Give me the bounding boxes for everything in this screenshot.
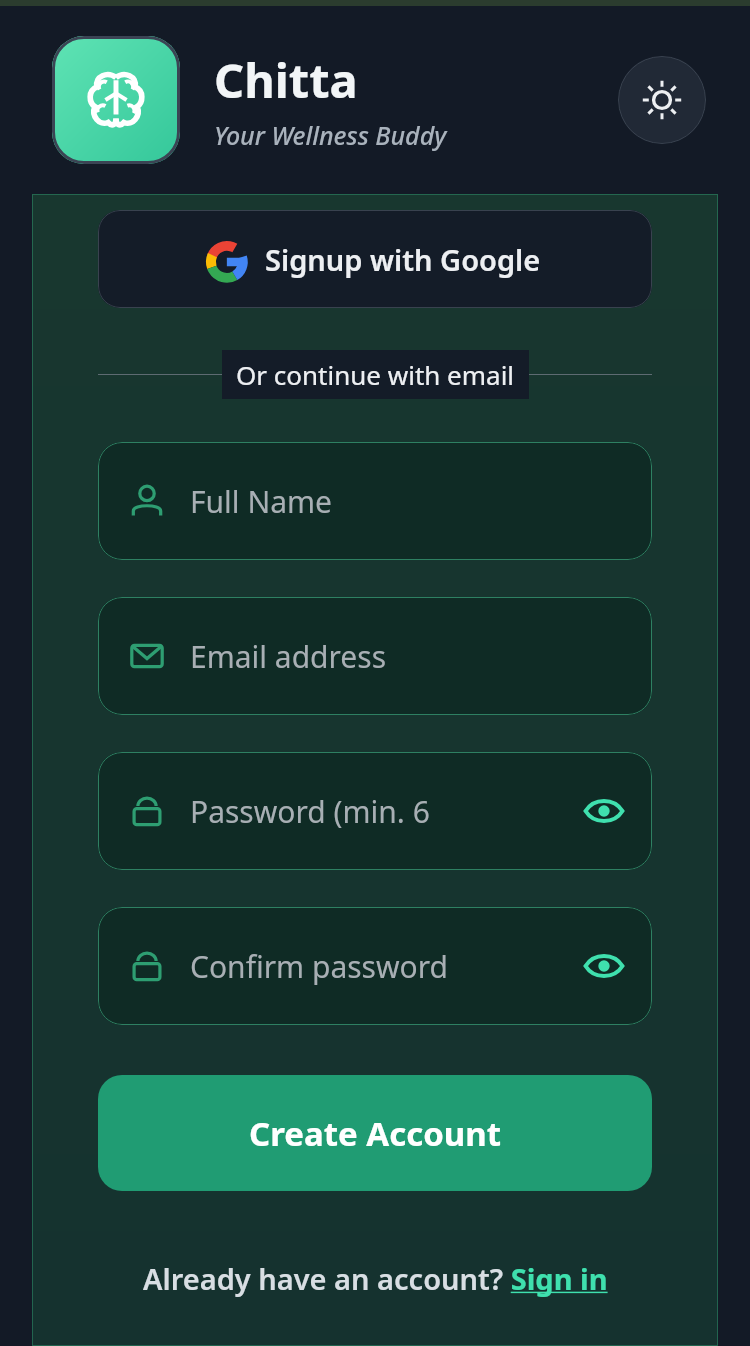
button[interactable]: Toggle theme [618, 56, 706, 144]
button[interactable]: Show password [578, 785, 630, 837]
button[interactable]: Confirm password [98, 907, 652, 1025]
button[interactable]: Full Name [98, 442, 652, 560]
staticText: Your Wellness Buddy [214, 118, 447, 152]
button[interactable]: Email address [98, 597, 652, 715]
staticText: Full Name [190, 481, 630, 522]
staticText: Password (min. 6 characters) [190, 791, 570, 832]
button[interactable]: Signup with Google [98, 210, 652, 308]
staticText: Already have an account? Sign in [143, 1259, 608, 1298]
staticText: Or continue with email [236, 357, 515, 392]
button[interactable]: Show password [578, 940, 630, 992]
staticText: Chitta [214, 48, 358, 112]
staticText: Signup with Google [265, 240, 541, 279]
button[interactable]: Already have an account? Sign in [98, 1259, 652, 1298]
staticText: Email address [190, 636, 630, 677]
staticText: Confirm password [190, 946, 570, 987]
staticText: Create Account [249, 1111, 502, 1156]
button[interactable]: Password (min. 6 characters) [98, 752, 652, 870]
button[interactable]: Chitta logo [52, 36, 180, 164]
button[interactable]: Create Account [98, 1075, 652, 1191]
